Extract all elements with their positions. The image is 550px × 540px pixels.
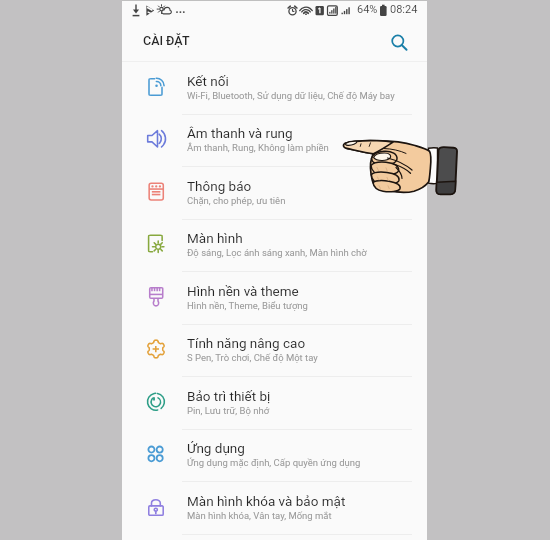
button[interactable]: Kết nối bbox=[122, 62, 427, 115]
button[interactable]: Thông báo bbox=[122, 167, 427, 220]
staticText: Wi-Fi, Bluetooth, Sử dụng dữ liệu, Chế đ… bbox=[187, 90, 395, 101]
staticText: Ứng dụng mặc định, Cấp quyền ứng dụng bbox=[187, 457, 361, 468]
staticText: Âm thanh, Rung, Không làm phiền bbox=[187, 142, 329, 153]
staticText: 64% bbox=[357, 3, 378, 16]
staticText: Màn hình khóa và bảo mật bbox=[187, 493, 346, 509]
staticText: Âm thanh và rung bbox=[187, 125, 293, 141]
staticText: Độ sáng, Lọc ánh sáng xanh, Màn hình chờ bbox=[187, 247, 367, 258]
staticText: Hình nền, Theme, Biểu tượng bbox=[187, 300, 308, 311]
staticText: Bảo trì thiết bị bbox=[187, 388, 271, 404]
staticText: 08:24 bbox=[390, 3, 418, 16]
staticText: Thông báo bbox=[187, 178, 252, 194]
button[interactable]: Tính năng nâng cao bbox=[122, 324, 427, 377]
staticText: Pin, Lưu trữ, Bộ nhớ bbox=[187, 405, 270, 416]
staticText: CÀI ĐẶT bbox=[143, 33, 190, 48]
staticText: Tính năng nâng cao bbox=[187, 335, 306, 351]
staticText: S Pen, Trò chơi, Chế độ Một tay bbox=[187, 352, 318, 363]
button[interactable]: Ứng dụng bbox=[122, 429, 427, 482]
staticText: Ứng dụng bbox=[187, 440, 245, 456]
staticText: Hình nền và theme bbox=[187, 283, 299, 299]
staticText: Chặn, cho phép, ưu tiên bbox=[187, 195, 286, 206]
button[interactable]: Màn hình bbox=[122, 219, 427, 272]
button[interactable]: Hình nền và theme bbox=[122, 272, 427, 325]
staticText: Màn hình khóa, Vân tay, Mống mắt bbox=[187, 510, 332, 521]
button[interactable]: Âm thanh và rung bbox=[122, 114, 427, 167]
button[interactable]: Bảo trì thiết bị bbox=[122, 377, 427, 430]
staticText: Kết nối bbox=[187, 73, 229, 89]
button[interactable]: Search bbox=[380, 23, 418, 61]
staticText: Màn hình bbox=[187, 230, 243, 246]
button[interactable]: Màn hình khóa và bảo mật bbox=[122, 482, 427, 535]
